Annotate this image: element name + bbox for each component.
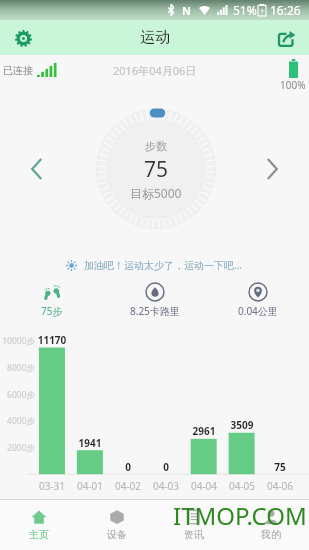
staticText: 3509 [217, 418, 267, 432]
staticText: 04-06 [255, 479, 305, 493]
button[interactable]: 资讯 [155, 500, 232, 550]
staticText: 0.04公里 [238, 304, 278, 318]
staticText: 资讯 [184, 528, 204, 541]
button[interactable]: 设备 [78, 500, 155, 550]
staticText: 目标5000 [130, 185, 182, 201]
staticText: 0 [103, 460, 153, 474]
staticText: 11170 [27, 333, 77, 347]
staticText: 03-31 [27, 479, 77, 493]
staticText: 我的 [261, 528, 281, 541]
button[interactable]: 8.25卡路里 [103, 282, 206, 318]
staticText: 加油吧！运动太少了，运动一下吧... [84, 258, 243, 272]
staticText: 2961 [179, 424, 229, 438]
staticText: 运动 [140, 28, 170, 47]
staticText: 51% [233, 2, 257, 18]
staticText: 75 [144, 155, 169, 184]
button[interactable]: 我的 [232, 500, 309, 550]
staticText: 75步 [41, 304, 63, 318]
staticText: 1941 [65, 436, 115, 450]
staticText: N [182, 3, 191, 18]
button[interactable]: Share [273, 25, 299, 51]
button[interactable]: Next day [257, 154, 287, 184]
button[interactable]: 75步 [0, 282, 103, 318]
button[interactable]: Previous day [22, 154, 52, 184]
staticText: 04-03 [141, 479, 191, 493]
staticText: ITMOP.COM [173, 499, 307, 532]
staticText: 04-05 [217, 479, 267, 493]
staticText: 0 [141, 460, 191, 474]
staticText: 设备 [107, 528, 127, 541]
staticText: 10000步 [0, 335, 35, 347]
staticText: 2016年04月06日 [113, 63, 197, 78]
staticText: 16:26 [270, 2, 301, 18]
button[interactable]: 步数 [96, 109, 216, 229]
staticText: 75 [255, 460, 305, 474]
staticText: 主页 [29, 528, 49, 541]
staticText: 8.25卡路里 [130, 304, 180, 318]
staticText: 4000步 [0, 415, 35, 427]
staticText: 已连接 [3, 64, 33, 77]
staticText: 8000步 [0, 362, 35, 374]
staticText: 6000步 [0, 389, 35, 401]
button[interactable]: Settings [10, 25, 36, 51]
button[interactable]: 主页 [0, 500, 78, 550]
staticText: 100% [280, 78, 306, 92]
staticText: 步数 [145, 139, 167, 153]
staticText: 2000步 [0, 442, 35, 454]
staticText: 04-01 [65, 479, 115, 493]
button[interactable]: 0.04公里 [206, 282, 309, 318]
staticText: 04-04 [179, 479, 229, 493]
staticText: 04-02 [103, 479, 153, 493]
